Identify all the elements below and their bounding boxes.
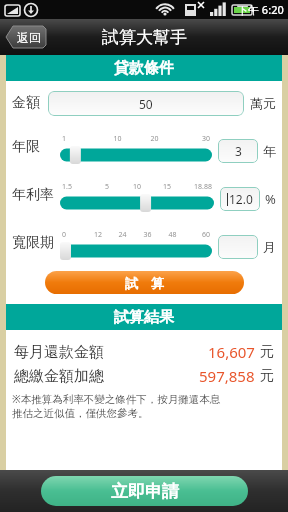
staticText: 立即申請 xyxy=(111,481,179,502)
staticText: 元 xyxy=(260,367,274,385)
staticText: 10 xyxy=(99,134,136,144)
staticText: 36 xyxy=(135,230,160,240)
button[interactable] xyxy=(218,235,258,259)
staticText: 10 xyxy=(122,182,152,192)
staticText: 金額 xyxy=(12,94,40,112)
staticText: 年利率 xyxy=(12,186,54,204)
staticText: 60 xyxy=(185,230,210,240)
button[interactable]: 50 xyxy=(48,91,244,116)
button[interactable]: 試 算 xyxy=(45,271,244,294)
staticText: 試 算 xyxy=(125,274,164,292)
staticText: 24 xyxy=(110,230,135,240)
staticText: 0 xyxy=(62,230,86,240)
staticText: 年限 xyxy=(12,138,40,156)
staticText: 年 xyxy=(263,143,276,159)
staticText: 返回 xyxy=(17,30,41,45)
button[interactable]: 寬限期 xyxy=(60,242,212,260)
button[interactable]: 立即申請 xyxy=(41,476,248,506)
staticText: % xyxy=(265,190,276,208)
staticText: 50 xyxy=(139,96,153,112)
staticText: 5 xyxy=(92,182,122,192)
staticText: 貸款條件 xyxy=(114,59,174,78)
staticText: 12 xyxy=(86,230,110,240)
staticText: 1.5 xyxy=(62,182,92,192)
button[interactable]: 年限 xyxy=(60,146,212,164)
staticText: 3 xyxy=(235,143,242,159)
staticText: 48 xyxy=(160,230,185,240)
button[interactable]: 3 xyxy=(218,139,258,163)
staticText: 元 xyxy=(260,343,274,361)
staticText: 1 xyxy=(62,134,99,144)
staticText: 12.0 xyxy=(229,191,253,207)
button[interactable]: 返回 xyxy=(6,25,46,49)
staticText: 試算大幫手 xyxy=(102,27,187,48)
staticText: 下午 6:20 xyxy=(237,2,284,17)
staticText: 18.88 xyxy=(182,182,212,192)
staticText: 總繳金額加總 xyxy=(14,367,104,386)
staticText: 月 xyxy=(263,239,276,255)
staticText: 15 xyxy=(152,182,182,192)
staticText: 寬限期 xyxy=(12,234,54,252)
staticText: ※本推算為利率不變之條件下，按月攤還本息 推估之近似值，僅供您參考。 xyxy=(12,392,221,421)
staticText: 16,607 xyxy=(208,342,255,362)
staticText: 20 xyxy=(136,134,173,144)
button[interactable]: 年利率 xyxy=(60,194,214,212)
staticText: 597,858 xyxy=(199,366,255,386)
staticText: 萬元 xyxy=(250,95,276,111)
staticText: 試算結果 xyxy=(114,308,174,327)
staticText: 30 xyxy=(173,134,210,144)
staticText: 每月還款金額 xyxy=(14,343,104,362)
button[interactable]: 12.0 xyxy=(220,187,260,211)
